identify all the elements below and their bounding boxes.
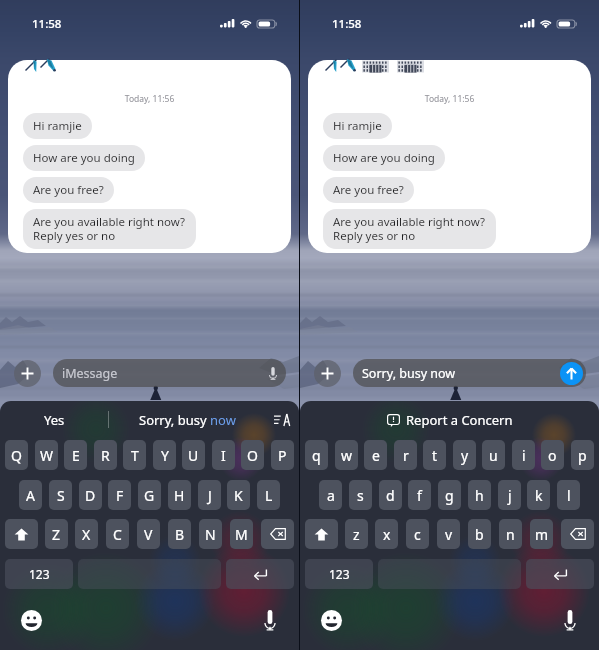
button[interactable]: Return (226, 559, 294, 589)
button[interactable]: r (394, 440, 417, 470)
button[interactable]: X (75, 519, 98, 549)
button[interactable]: T (123, 440, 146, 470)
button[interactable]: V (137, 519, 160, 549)
button[interactable]: w (335, 440, 358, 470)
button[interactable]: N (199, 519, 222, 549)
button[interactable]: Backspace (561, 519, 594, 549)
button[interactable]: How are you doing (333, 150, 435, 166)
button[interactable]: Emoji (321, 610, 342, 631)
staticText: o (548, 446, 557, 465)
button[interactable]: y (453, 440, 476, 470)
button[interactable]: j (498, 480, 521, 510)
staticText: x (383, 525, 391, 544)
staticText: V (144, 525, 153, 544)
button[interactable]: s (349, 480, 372, 510)
button[interactable]: Yes (0, 401, 108, 438)
button[interactable]: b (468, 519, 491, 549)
button[interactable]: Are you free? (33, 182, 104, 198)
button[interactable]: E (64, 440, 87, 470)
staticText: Sorry, busy now (362, 365, 456, 382)
button[interactable]: Sorry, busy now (362, 359, 583, 387)
button[interactable]: Shift (5, 519, 38, 549)
button[interactable]: Report a Concern (387, 411, 513, 429)
button[interactable]: g (438, 480, 461, 510)
staticText: j (508, 486, 512, 505)
button[interactable]: q (305, 440, 328, 470)
button[interactable]: D (79, 480, 102, 510)
button[interactable]: o (541, 440, 564, 470)
button[interactable]: m (530, 519, 553, 549)
staticText: How are you doing (33, 150, 135, 166)
staticText: y (461, 446, 469, 465)
staticText: g (445, 486, 454, 505)
button[interactable]: I (212, 440, 235, 470)
staticText: U (188, 446, 199, 465)
staticText: n (506, 525, 515, 544)
button[interactable]: O (241, 440, 264, 470)
staticText: h (475, 486, 484, 505)
staticText: Report a Concern (406, 411, 513, 429)
button[interactable]: Text formatting (265, 401, 299, 438)
button[interactable]: n (499, 519, 522, 549)
button[interactable]: B (168, 519, 191, 549)
button[interactable]: c (406, 519, 429, 549)
button[interactable]: Emoji (21, 610, 42, 631)
button[interactable]: F (108, 480, 131, 510)
button[interactable]: Q (5, 440, 28, 470)
button[interactable]: k (527, 480, 550, 510)
button[interactable]: Add attachment (314, 360, 341, 387)
staticText: k (535, 486, 543, 505)
button[interactable]: Sorry, busy (109, 401, 265, 438)
staticText: R (101, 446, 110, 465)
button[interactable]: Z (45, 519, 68, 549)
button[interactable]: Y (153, 440, 176, 470)
button[interactable]: z (345, 519, 368, 549)
staticText: F (116, 486, 124, 505)
button[interactable]: i (512, 440, 535, 470)
button[interactable]: Dictate (263, 610, 277, 631)
button[interactable]: e (364, 440, 387, 470)
button[interactable]: Space (378, 559, 521, 589)
button[interactable]: W (35, 440, 58, 470)
button[interactable]: Shift (305, 519, 338, 549)
button[interactable]: Hi ramjie (333, 118, 382, 134)
button[interactable]: U (182, 440, 205, 470)
button[interactable]: S (49, 480, 72, 510)
button[interactable]: G (138, 480, 161, 510)
button[interactable]: R (94, 440, 117, 470)
button[interactable]: h (468, 480, 491, 510)
button[interactable]: P (271, 440, 294, 470)
button[interactable]: t (423, 440, 446, 470)
button[interactable]: 123 (5, 559, 73, 589)
button[interactable]: K (227, 480, 250, 510)
button[interactable]: Are you free? (333, 182, 404, 198)
button[interactable]: f (408, 480, 431, 510)
button[interactable]: iMessage (62, 359, 283, 387)
button[interactable]: Space (78, 559, 221, 589)
staticText: S (57, 486, 65, 505)
button[interactable]: v (437, 519, 460, 549)
button[interactable]: Add attachment (14, 360, 41, 387)
button[interactable]: u (482, 440, 505, 470)
button[interactable]: l (557, 480, 580, 510)
button[interactable]: L (257, 480, 280, 510)
button[interactable]: C (106, 519, 129, 549)
button[interactable]: p (571, 440, 594, 470)
button[interactable]: How are you doing (33, 150, 135, 166)
button[interactable]: J (198, 480, 221, 510)
button[interactable]: d (379, 480, 402, 510)
button[interactable]: Backspace (261, 519, 294, 549)
button[interactable]: Return (526, 559, 594, 589)
button[interactable]: Dictate (563, 610, 577, 631)
button[interactable]: a (319, 480, 342, 510)
button[interactable]: Are you available right now? Reply yes o… (33, 214, 186, 244)
button[interactable]: A (19, 480, 42, 510)
staticText: a (327, 486, 335, 505)
button[interactable]: x (375, 519, 398, 549)
button[interactable]: H (168, 480, 191, 510)
button[interactable]: 123 (305, 559, 373, 589)
button[interactable]: Send (560, 362, 583, 385)
button[interactable]: M (230, 519, 253, 549)
button[interactable]: Are you available right now? Reply yes o… (333, 214, 486, 244)
button[interactable]: Hi ramjie (33, 118, 82, 134)
